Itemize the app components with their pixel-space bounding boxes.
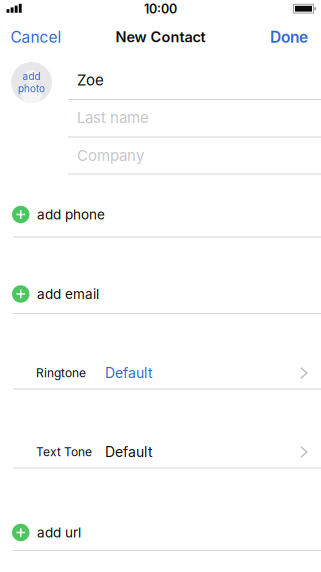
button[interactable]: Last name: [0, 102, 321, 132]
staticText: photo: [18, 82, 45, 95]
button[interactable]: add: [11, 62, 52, 103]
staticText: add email: [37, 286, 99, 302]
button[interactable]: add email: [0, 277, 321, 311]
staticText: Cancel: [10, 28, 61, 46]
staticText: Zoe: [77, 71, 104, 89]
staticText: 10:00: [144, 1, 177, 16]
button[interactable]: Company: [0, 140, 321, 170]
staticText: Default: [105, 443, 153, 460]
button[interactable]: Cancel: [10, 28, 61, 46]
button[interactable]: Done: [270, 28, 308, 46]
staticText: Done: [270, 28, 308, 46]
button[interactable]: add phone: [0, 197, 321, 231]
staticText: Last name: [77, 108, 149, 126]
button[interactable]: Text Tone: [0, 435, 321, 469]
button[interactable]: Zoe: [0, 65, 321, 95]
staticText: add url: [37, 524, 81, 541]
button[interactable]: Ringtone: [0, 356, 321, 390]
staticText: Company: [77, 146, 144, 164]
staticText: add: [22, 70, 40, 82]
staticText: Default: [105, 364, 153, 381]
staticText: add phone: [37, 206, 105, 223]
staticText: Ringtone: [36, 366, 86, 380]
staticText: New Contact: [115, 28, 205, 46]
button[interactable]: add url: [0, 515, 321, 549]
staticText: Text Tone: [36, 445, 92, 459]
